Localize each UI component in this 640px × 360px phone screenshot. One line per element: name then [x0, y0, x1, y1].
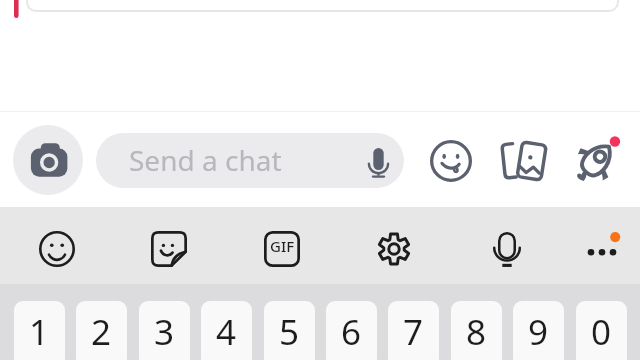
staticText: 2 [91, 308, 112, 356]
button[interactable]: Open camera [13, 125, 83, 195]
staticText: GIF [270, 236, 295, 256]
button[interactable]: 8 [451, 301, 502, 360]
button[interactable]: 0 [576, 301, 627, 360]
button[interactable]: Voice input [481, 223, 533, 275]
staticText: 6 [341, 308, 362, 356]
staticText: 1 [29, 308, 50, 356]
button[interactable]: Record voice note [355, 139, 401, 185]
button[interactable]: 2 [76, 301, 127, 360]
button[interactable]: 7 [388, 301, 439, 360]
staticText: Send a chat [129, 141, 282, 179]
staticText: 5 [279, 308, 300, 356]
button[interactable]: Stickers [143, 223, 195, 275]
button[interactable]: Rocket launcher [571, 134, 623, 186]
button[interactable]: Stickers [425, 135, 477, 187]
staticText: 0 [591, 308, 612, 356]
button[interactable]: 9 [513, 301, 564, 360]
staticText: 9 [528, 308, 549, 356]
staticText: 7 [403, 308, 424, 356]
button[interactable]: Keyboard settings [368, 223, 420, 275]
button[interactable]: 4 [201, 301, 252, 360]
button[interactable]: 6 [326, 301, 377, 360]
button[interactable]: Send a chat [96, 133, 404, 188]
staticText: 3 [154, 308, 175, 356]
button[interactable]: Snaps [498, 135, 550, 187]
button[interactable]: 3 [139, 301, 190, 360]
button[interactable]: Emoji keyboard [31, 223, 83, 275]
button[interactable]: More options [576, 223, 628, 275]
staticText: 4 [216, 308, 237, 356]
button[interactable]: 1 [14, 301, 65, 360]
staticText: 8 [466, 308, 487, 356]
button[interactable]: GIF [256, 223, 308, 275]
button[interactable]: 5 [264, 301, 315, 360]
